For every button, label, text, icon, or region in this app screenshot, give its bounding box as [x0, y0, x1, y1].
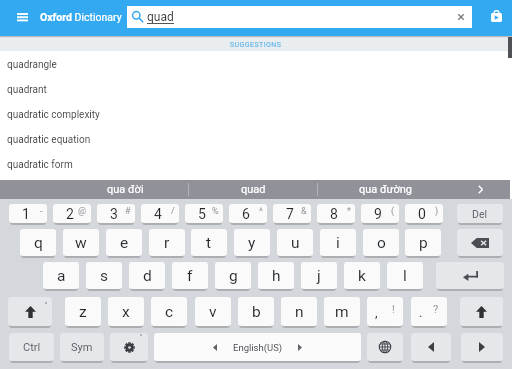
staticText: c: [165, 303, 174, 321]
staticText: k: [358, 267, 366, 285]
staticText: 9: [374, 206, 382, 222]
staticText: z: [79, 303, 87, 321]
staticText: .: [419, 305, 423, 320]
button[interactable]: quadratic complexity: [0, 102, 512, 127]
staticText: 5: [198, 206, 206, 222]
staticText: (: [391, 206, 395, 217]
staticText: qua đời: [107, 183, 144, 196]
button[interactable]: Change keyboard: [367, 333, 403, 361]
button[interactable]: e: [106, 229, 142, 256]
staticText: Sym: [71, 341, 93, 354]
button[interactable]: o: [363, 229, 399, 256]
button[interactable]: Play Store: [486, 6, 506, 26]
button[interactable]: t: [191, 229, 227, 256]
button[interactable]: Enter: [436, 262, 504, 289]
staticText: quadrant: [7, 84, 47, 96]
button[interactable]: quad: [127, 6, 472, 28]
button[interactable]: f: [172, 262, 208, 289]
button[interactable]: quadratic equation: [0, 127, 512, 152]
button[interactable]: quadrangle: [0, 52, 512, 77]
staticText: n: [295, 303, 304, 321]
button[interactable]: 3: [97, 204, 135, 223]
button[interactable]: 7: [273, 204, 311, 223]
staticText: g: [229, 267, 238, 285]
button[interactable]: 5: [185, 204, 223, 223]
button[interactable]: i: [320, 229, 356, 256]
staticText: w: [75, 234, 87, 252]
staticText: 7: [286, 206, 294, 222]
button[interactable]: quadratic form: [0, 152, 512, 177]
button[interactable]: quadrant: [0, 77, 512, 102]
button[interactable]: y: [234, 229, 270, 256]
button[interactable]: k: [344, 262, 380, 289]
button[interactable]: More suggestions: [451, 180, 510, 199]
button[interactable]: Ctrl: [9, 333, 54, 361]
button[interactable]: Shift: [460, 297, 503, 326]
button[interactable]: p: [405, 229, 441, 256]
button[interactable]: 6: [229, 204, 267, 223]
staticText: o: [377, 234, 386, 252]
staticText: t: [206, 234, 212, 252]
button[interactable]: qua đường: [318, 180, 452, 199]
staticText: ): [435, 206, 439, 217]
button[interactable]: 2: [53, 204, 91, 223]
button[interactable]: ,: [367, 297, 403, 326]
button[interactable]: s: [86, 262, 122, 289]
button[interactable]: g: [215, 262, 251, 289]
staticText: /: [171, 206, 175, 217]
staticText: quadrangle: [7, 59, 57, 71]
button[interactable]: b: [238, 297, 274, 326]
button[interactable]: English(US): [154, 333, 361, 361]
button[interactable]: Move cursor left: [411, 333, 451, 361]
button[interactable]: Del: [457, 204, 503, 223]
button[interactable]: l: [387, 262, 423, 289]
staticText: 3: [110, 206, 118, 222]
button[interactable]: Clear search: [451, 7, 471, 27]
staticText: %: [212, 206, 219, 217]
staticText: u: [291, 234, 300, 252]
staticText: ,: [375, 305, 378, 320]
button[interactable]: m: [324, 297, 360, 326]
button[interactable]: n: [281, 297, 317, 326]
button[interactable]: qua đời: [62, 180, 188, 199]
button[interactable]: c: [151, 297, 187, 326]
staticText: v: [209, 303, 217, 321]
staticText: #: [125, 206, 131, 217]
button[interactable]: Open navigation menu: [10, 5, 34, 29]
button[interactable]: 8: [317, 204, 355, 223]
button[interactable]: Keyboard settings: [110, 333, 148, 361]
staticText: b: [252, 303, 261, 321]
button[interactable]: Backspace: [457, 229, 503, 256]
button[interactable]: 9: [361, 204, 399, 223]
staticText: h: [272, 267, 281, 285]
button[interactable]: d: [129, 262, 165, 289]
button[interactable]: u: [277, 229, 313, 256]
staticText: &: [301, 206, 307, 217]
button[interactable]: 0: [405, 204, 443, 223]
button[interactable]: x: [108, 297, 144, 326]
button[interactable]: quad: [189, 180, 317, 199]
button[interactable]: r: [149, 229, 185, 256]
staticText: SUGGESTIONS: [230, 41, 282, 49]
button[interactable]: w: [63, 229, 99, 256]
button[interactable]: z: [65, 297, 101, 326]
staticText: English(US): [233, 342, 283, 353]
staticText: quadratic equation: [7, 134, 91, 146]
button[interactable]: h: [258, 262, 294, 289]
button[interactable]: Move cursor right: [461, 333, 503, 361]
button[interactable]: 1: [9, 204, 47, 223]
button[interactable]: j: [301, 262, 337, 289]
button[interactable]: Sym: [60, 333, 104, 361]
staticText: r: [164, 234, 170, 252]
button[interactable]: 4: [141, 204, 179, 223]
button[interactable]: Shift: [8, 297, 52, 326]
staticText: p: [419, 234, 428, 252]
button[interactable]: q: [20, 229, 56, 256]
staticText: ?: [433, 303, 439, 316]
button[interactable]: .: [411, 297, 447, 326]
staticText: l: [403, 267, 407, 285]
button[interactable]: v: [195, 297, 231, 326]
button[interactable]: a: [43, 262, 79, 289]
staticText: 1: [22, 206, 30, 222]
staticText: quadratic form: [7, 159, 73, 171]
